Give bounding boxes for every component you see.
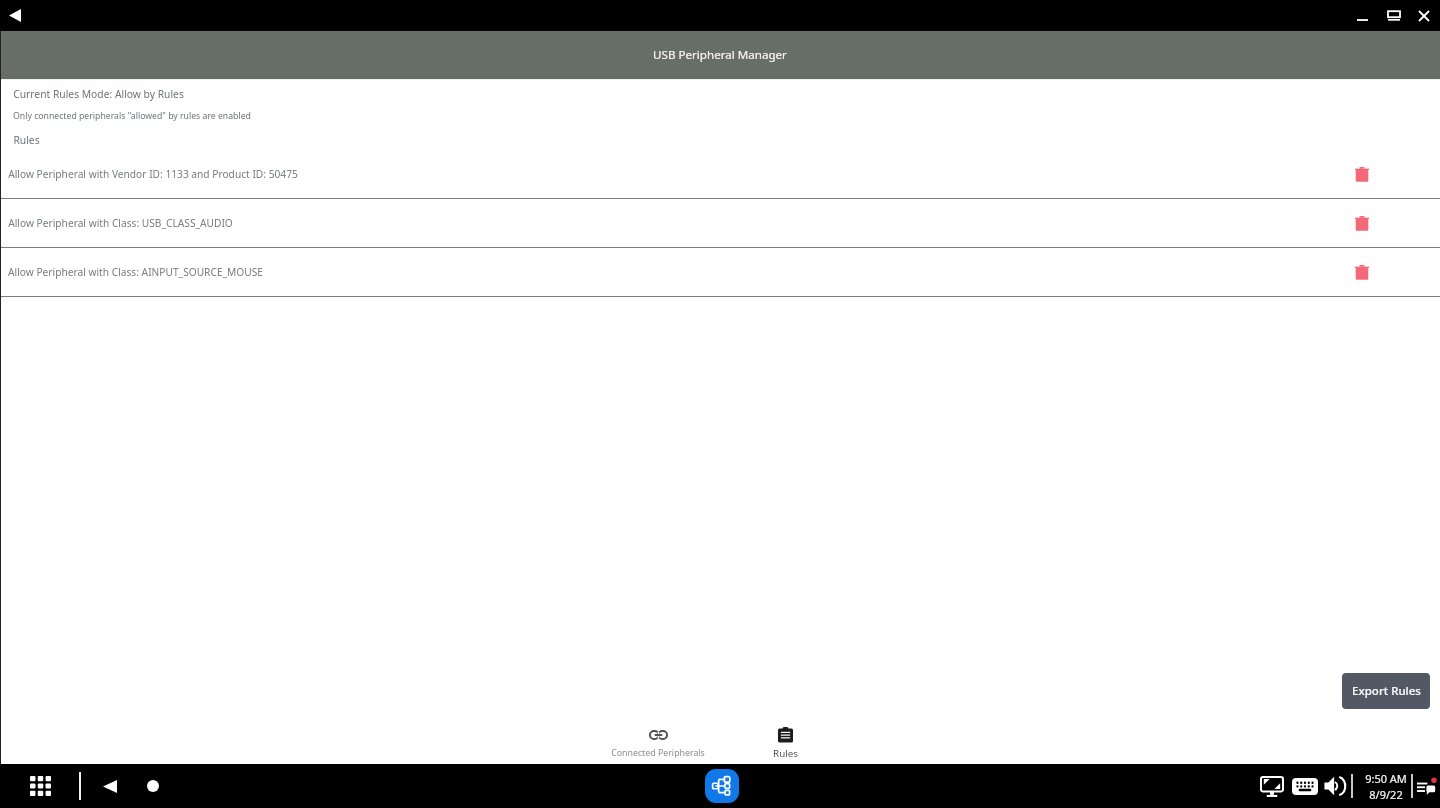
button[interactable]: Delete rule [1352,164,1372,184]
staticText: Current Rules Mode: Allow by Rules [13,87,184,101]
button[interactable]: Launcher [24,770,56,802]
button[interactable]: Allow Peripheral with Class: AINPUT_SOUR… [0,248,1440,296]
staticText: Connected Peripherals [611,747,705,759]
button[interactable]: Home [140,773,166,799]
button[interactable]: Display [1260,764,1284,808]
button[interactable]: Close [1409,0,1439,31]
staticText: Rules [13,133,40,147]
button[interactable]: Minimize [1346,0,1378,31]
staticText: Export Rules [1352,683,1421,699]
staticText: 8/9/22 [1369,787,1403,802]
button[interactable]: Keyboard [1291,764,1318,808]
staticText: 9:50 AM [1365,771,1407,786]
button[interactable]: Notifications [1416,764,1437,808]
button[interactable]: Allow Peripheral with Class: USB_CLASS_A… [0,199,1440,247]
staticText: USB Peripheral Manager [653,47,787,63]
button[interactable]: Restore [1378,0,1409,31]
staticText: Allow Peripheral with Vendor ID: 1133 an… [8,167,298,181]
button[interactable]: Export Rules [1342,673,1430,709]
button[interactable]: 9:50 AM [1363,764,1409,808]
button[interactable]: Volume [1324,764,1346,808]
staticText: Allow Peripheral with Class: USB_CLASS_A… [8,216,233,230]
button[interactable]: Connected Peripherals [603,722,713,763]
button[interactable]: Back [97,773,123,799]
button[interactable]: Rules [765,722,806,764]
button[interactable]: Allow Peripheral with Vendor ID: 1133 an… [0,150,1440,198]
button[interactable]: Back [3,4,26,27]
staticText: Rules [773,747,798,760]
staticText: Only connected peripherals "allowed" by … [13,110,251,122]
button[interactable]: Delete rule [1352,262,1372,282]
button[interactable]: Delete rule [1352,213,1372,233]
button[interactable]: USB Peripheral Manager [705,769,739,803]
staticText: Allow Peripheral with Class: AINPUT_SOUR… [8,265,263,279]
